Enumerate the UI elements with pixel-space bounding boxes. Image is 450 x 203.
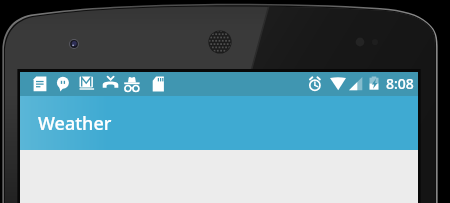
staticText: Weather	[38, 111, 112, 136]
button[interactable]: Weather	[20, 96, 418, 150]
staticText: 8:08	[386, 74, 414, 93]
